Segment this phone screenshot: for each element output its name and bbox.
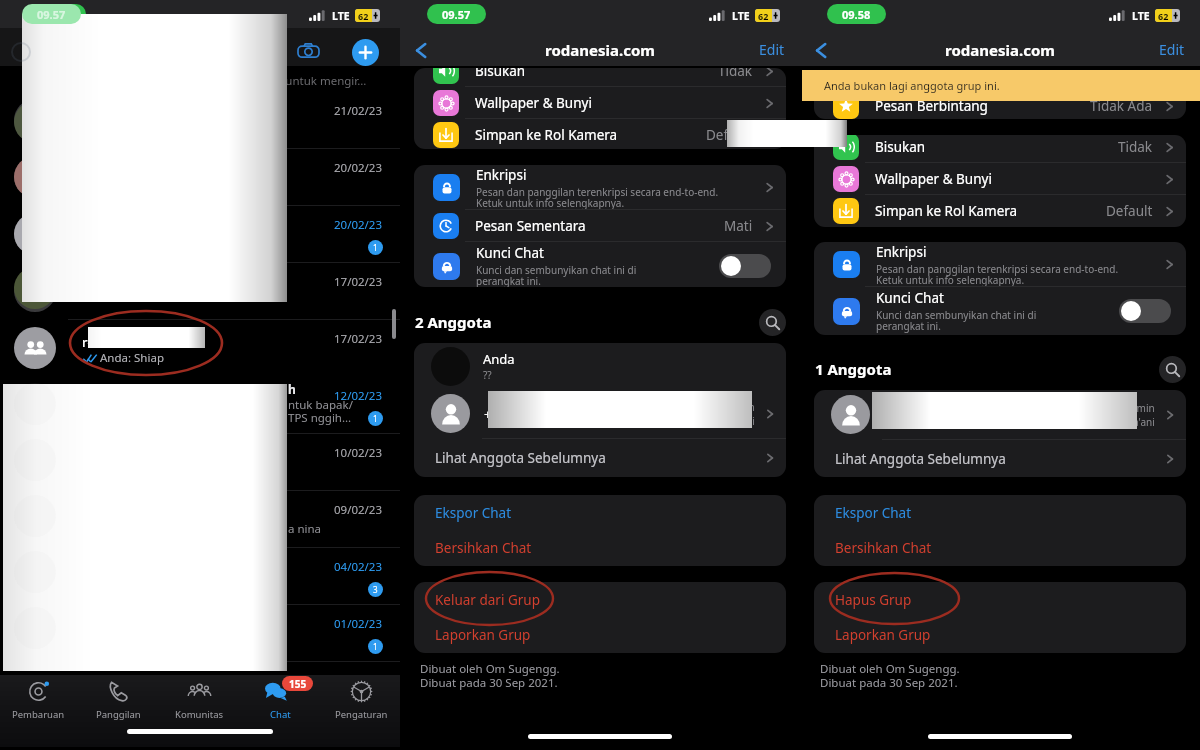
staticText: Wallpaper & Bunyi (475, 94, 592, 112)
button[interactable]: Enkripsi (814, 242, 1186, 287)
button[interactable]: Bersihkan Chat (414, 530, 786, 565)
button[interactable]: Camera (297, 41, 320, 61)
staticText: Dibuat oleh Om Sugengg. Dibuat pada 30 S… (820, 661, 960, 690)
button[interactable]: Search (1159, 356, 1186, 383)
button[interactable]: Komunitas (161, 675, 238, 721)
staticText: Anda bukan lagi anggota grup ini. (824, 78, 1000, 93)
staticText: Pesan dan panggilan terenkripsi secara e… (476, 185, 719, 210)
staticText: Simpan ke Rol Kamera (475, 126, 618, 144)
button[interactable]: Pesan Sementara (414, 210, 786, 242)
button[interactable]: Bisukan (814, 135, 1186, 163)
button[interactable]: 04/02/23 (0, 548, 400, 605)
button[interactable]: Enkripsi (414, 165, 786, 210)
staticText: Kunci dan sembunyikan chat ini di perang… (476, 263, 637, 287)
staticText: Pembaruan (12, 708, 65, 721)
staticText: 09/02/23 (334, 502, 383, 518)
button[interactable]: Pesan Berbintang (814, 90, 1186, 119)
button[interactable]: New chat (352, 39, 379, 66)
staticText: Bersihkan Chat (435, 539, 532, 557)
staticText: Default (1106, 202, 1153, 220)
button[interactable]: Hapus Grup (814, 582, 1186, 617)
staticText: 62 (358, 10, 369, 22)
staticText: 10/02/23 (334, 445, 383, 461)
button[interactable]: Toggle chat lock (1119, 299, 1171, 323)
button[interactable]: 10/02/23 (0, 434, 400, 491)
staticText: Pengaturan (335, 708, 388, 721)
button[interactable]: Keluar dari Grup (414, 582, 786, 617)
staticText: 2 Anggota (415, 312, 492, 332)
button[interactable]: +62 (814, 390, 1186, 439)
staticText: 1 Anggota (815, 359, 892, 379)
button[interactable]: Ekspor Chat (814, 495, 1186, 530)
button[interactable]: Back (807, 36, 835, 64)
staticText: Bersihkan Chat (835, 539, 932, 557)
button[interactable]: 01/02/23 (0, 605, 400, 662)
button[interactable]: Bersihkan Chat (814, 530, 1186, 565)
staticText: Chat (270, 708, 291, 721)
button[interactable]: Anda (414, 343, 786, 389)
button[interactable]: Panggilan (80, 675, 157, 721)
button[interactable]: Laporkan Grup (814, 617, 1186, 652)
button[interactable]: Toggle chat lock (719, 254, 771, 278)
button[interactable]: 155 (242, 675, 319, 721)
staticText: ?? (483, 368, 492, 382)
button[interactable]: Wallpaper & Bunyi (414, 87, 786, 119)
staticText: 1 (373, 641, 378, 652)
staticText: Anda: Shiap (100, 350, 164, 366)
staticText: Panggilan (96, 708, 141, 721)
button[interactable]: Edit (1147, 33, 1200, 66)
button[interactable]: Simpan ke Rol Kamera (814, 195, 1186, 227)
button[interactable]: Search (759, 309, 786, 336)
staticText: Komunitas (175, 708, 224, 721)
button[interactable]: Kunci Chat (814, 287, 1186, 335)
staticText: 3 (373, 584, 378, 595)
button[interactable]: 20/02/23 (0, 149, 400, 206)
staticText: Mati (724, 217, 753, 235)
staticText: 1 (373, 413, 378, 424)
staticText: ntuk bapak/ TPS nggih… (288, 397, 353, 426)
staticText: +62 (884, 406, 907, 424)
staticText: Admin (724, 400, 755, 414)
button[interactable]: Bisukan (414, 68, 786, 87)
staticText: 62 (1158, 10, 1169, 22)
button[interactable]: Simpan ke Rol Kamera (414, 119, 786, 149)
button[interactable]: ro (0, 320, 400, 377)
button[interactable]: 21/02/23 (0, 92, 400, 149)
staticText: Pesan Berbintang (875, 97, 988, 115)
button[interactable]: Ekspor Chat (414, 495, 786, 530)
staticText: +62 (484, 405, 507, 423)
button[interactable]: Pembaruan (0, 675, 77, 721)
button[interactable]: +62 (414, 389, 786, 438)
staticText: Hapus Grup (835, 591, 912, 609)
button[interactable]: Wallpaper & Bunyi (814, 163, 1186, 195)
button[interactable]: Pengaturan (323, 675, 400, 721)
staticText: Ma'ani (1124, 415, 1155, 429)
button[interactable]: 17/02/23 (0, 263, 400, 320)
staticText: Keluar dari Grup (435, 591, 540, 609)
button[interactable]: 20/02/23 (0, 206, 400, 263)
staticText: 04/02/23 (334, 559, 383, 575)
button[interactable]: Lihat Anggota Sebelumnya (414, 439, 786, 477)
button[interactable]: Lihat Anggota Sebelumnya (814, 440, 1186, 477)
staticText: Laporkan Grup (835, 626, 931, 644)
staticText: Pesan dan panggilan terenkripsi secara e… (876, 262, 1119, 287)
button[interactable]: Kunci Chat (414, 242, 786, 287)
button[interactable]: Edit (747, 33, 800, 66)
button[interactable]: Back (407, 36, 435, 64)
staticText: Ma'ani (724, 414, 755, 428)
button[interactable]: Laporkan Grup (414, 617, 786, 652)
button[interactable]: h (0, 377, 400, 434)
staticText: Default (706, 126, 753, 144)
staticText: LTE (1132, 9, 1150, 23)
button[interactable]: a nina (0, 491, 400, 548)
staticText: Simpan ke Rol Kamera (875, 202, 1018, 220)
staticText: LTE (732, 9, 750, 23)
staticText: 12/02/23 (334, 388, 383, 404)
staticText: Edit (759, 40, 785, 59)
staticText: Enkripsi (476, 166, 527, 184)
staticText: Tidak (718, 68, 753, 80)
staticText: 20/02/23 (334, 160, 383, 176)
staticText: Lihat Anggota Sebelumnya (435, 449, 606, 467)
staticText: ro (82, 333, 96, 351)
staticText: 62 (758, 10, 769, 22)
